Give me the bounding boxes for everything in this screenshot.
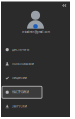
button[interactable]: ЗАГРУЗКИ <box>2 100 42 112</box>
staticText: testadmin@gmail.com <box>21 30 49 34</box>
staticText: ЛИЦЕНЗИИ <box>12 76 27 80</box>
button[interactable]: Collapse menu <box>59 1 68 9</box>
button[interactable]: НАСТРОЙКИ <box>2 86 42 98</box>
button[interactable]: ДИСПЕТЧЕРЫ <box>2 44 42 56</box>
staticText: ЗАГРУЗКИ <box>12 105 27 108</box>
staticText: НАСТРОЙКИ <box>12 90 29 94</box>
staticText: ДИСПЕТЧЕРЫ <box>12 48 29 51</box>
staticText: ПОЛЬЗОВАТЕЛИ <box>12 62 34 66</box>
button[interactable]: ЛИЦЕНЗИИ <box>2 72 42 84</box>
button[interactable]: ПОЛЬЗОВАТЕЛИ <box>2 58 42 70</box>
